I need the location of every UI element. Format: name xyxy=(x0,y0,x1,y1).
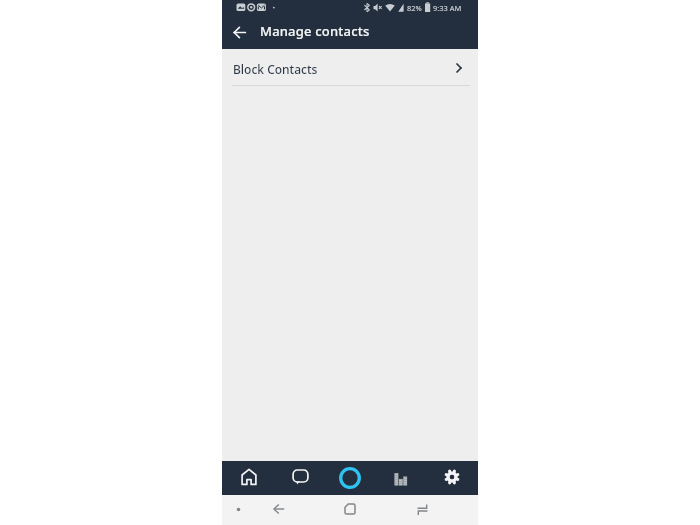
button[interactable]: Block Contacts xyxy=(222,49,478,85)
button[interactable] xyxy=(438,463,466,491)
button[interactable] xyxy=(336,464,364,492)
button[interactable] xyxy=(340,499,360,519)
button[interactable] xyxy=(412,499,433,520)
staticText: 82% xyxy=(407,3,422,13)
button[interactable] xyxy=(387,464,415,492)
button[interactable] xyxy=(286,463,314,491)
button[interactable] xyxy=(235,463,263,491)
button[interactable] xyxy=(269,499,289,519)
staticText: Manage contacts xyxy=(260,22,370,40)
button[interactable] xyxy=(231,502,246,517)
staticText: Block Contacts xyxy=(233,61,318,77)
button[interactable] xyxy=(229,22,250,43)
staticText: 9:33 AM xyxy=(433,3,462,13)
